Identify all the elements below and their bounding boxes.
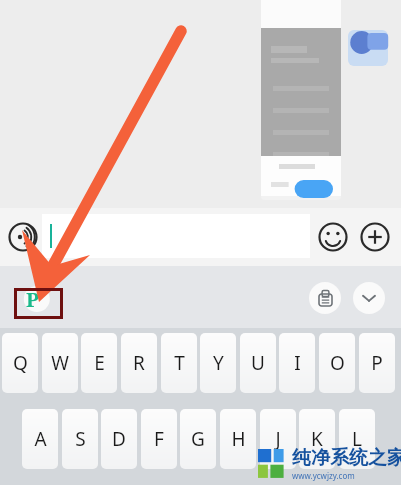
staticText: Y [213, 350, 224, 376]
staticText: I [294, 350, 301, 376]
button[interactable]: P [359, 333, 395, 393]
staticText: P [371, 350, 383, 376]
button[interactable]: Y [200, 333, 236, 393]
button[interactable]: More options [360, 222, 390, 252]
button[interactable]: T [161, 333, 197, 393]
button[interactable]: J [260, 409, 296, 469]
staticText: P [26, 286, 39, 312]
button[interactable]: F [141, 409, 177, 469]
staticText: www.ycwjzy.com [292, 470, 355, 481]
staticText: Q [13, 350, 28, 376]
button[interactable]: U [240, 333, 276, 393]
staticText: R [133, 350, 145, 376]
button[interactable]: S [62, 409, 98, 469]
button[interactable]: K [299, 409, 335, 469]
button[interactable]: Q [2, 333, 38, 393]
button[interactable]: I [279, 333, 315, 393]
staticText: O [330, 350, 345, 376]
staticText: K [311, 426, 323, 452]
button[interactable]: A [22, 409, 58, 469]
staticText: A [34, 426, 47, 452]
button[interactable]: L [339, 409, 375, 469]
staticText: S [75, 426, 86, 452]
staticText: J [275, 426, 281, 452]
staticText: W [51, 350, 69, 376]
staticText: E [94, 350, 105, 376]
button[interactable]: D [101, 409, 137, 469]
staticText: U [251, 350, 265, 376]
button[interactable]: O [319, 333, 355, 393]
button[interactable]: Emoji [318, 222, 348, 252]
button[interactable]: H [220, 409, 256, 469]
button[interactable]: G [180, 409, 216, 469]
button[interactable] [42, 214, 310, 258]
button[interactable]: Hide keyboard [353, 282, 385, 314]
staticText: T [174, 350, 185, 376]
staticText: F [154, 426, 164, 452]
staticText: D [112, 426, 126, 452]
button[interactable]: Input method logo [17, 286, 53, 312]
staticText: L [352, 426, 362, 452]
button[interactable]: W [42, 333, 78, 393]
staticText: H [231, 426, 246, 452]
staticText: 纯净系统之家 [292, 446, 401, 470]
button[interactable]: Voice input [8, 222, 38, 252]
staticText: G [191, 426, 205, 452]
button[interactable]: R [121, 333, 157, 393]
button[interactable]: Clipboard [309, 282, 341, 314]
button[interactable]: E [81, 333, 117, 393]
